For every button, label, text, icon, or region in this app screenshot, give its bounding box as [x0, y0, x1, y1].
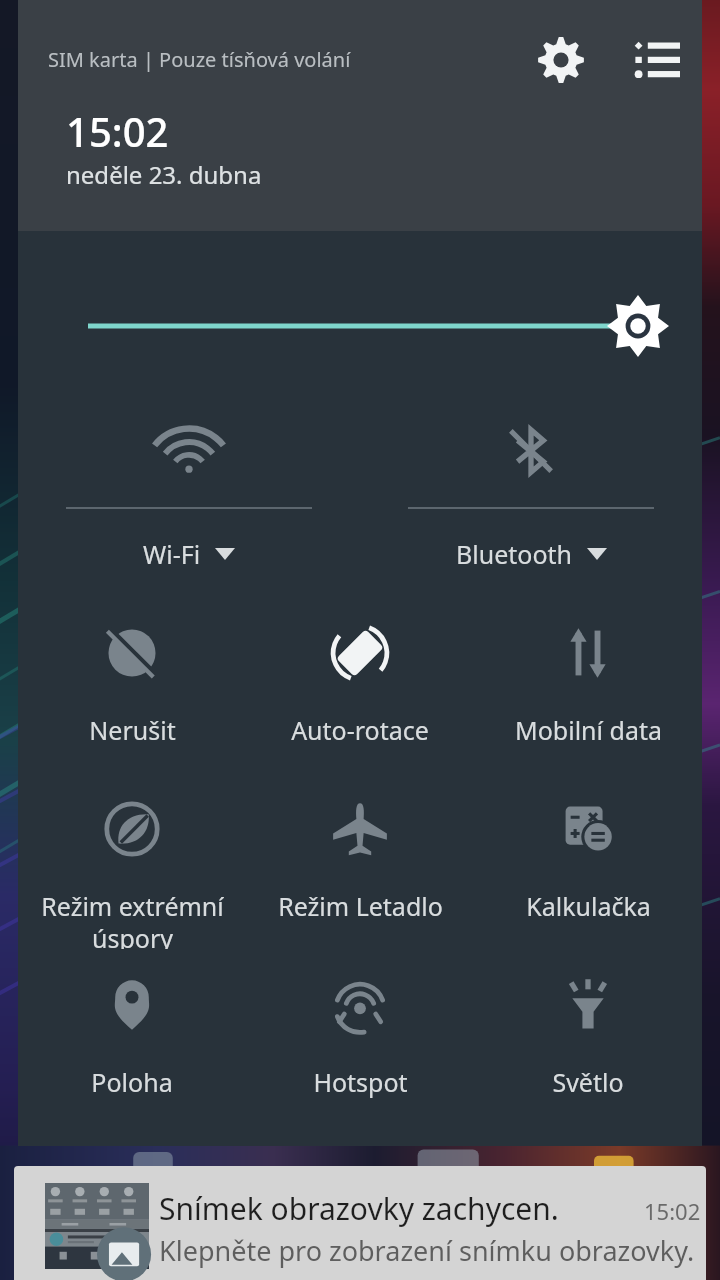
- staticText: Bluetooth: [456, 537, 573, 571]
- staticText: Světlo: [552, 1065, 624, 1099]
- button[interactable]: Kalkulačka: [474, 773, 702, 949]
- button[interactable]: Auto-rotace: [246, 597, 474, 773]
- button[interactable]: Wi-Fi: [18, 391, 360, 597]
- button[interactable]: Hotspot: [246, 949, 474, 1125]
- staticText: Hotspot: [313, 1065, 408, 1099]
- button[interactable]: Režim extrémní úspory: [18, 773, 246, 949]
- staticText: 15:02: [66, 104, 169, 158]
- staticText: Mobilní data: [515, 713, 662, 747]
- button[interactable]: Bluetooth: [360, 391, 702, 597]
- staticText: Režim extrémní úspory: [41, 889, 224, 949]
- staticText: Kalkulačka: [526, 889, 651, 923]
- button[interactable]: Notifications list: [625, 28, 689, 92]
- button[interactable]: Settings: [529, 28, 593, 92]
- button[interactable]: Brightness: [18, 289, 702, 363]
- staticText: Wi-Fi: [143, 537, 201, 571]
- staticText: Snímek obrazovky zachycen.: [159, 1188, 559, 1229]
- staticText: Režim Letadlo: [278, 889, 443, 923]
- staticText: 15:02: [644, 1196, 701, 1226]
- staticText: SIM karta | Pouze tísňová volání: [48, 46, 351, 73]
- button[interactable]: Nerušit: [18, 597, 246, 773]
- button[interactable]: Mobilní data: [474, 597, 702, 773]
- button[interactable]: Poloha: [18, 949, 246, 1125]
- staticText: Auto-rotace: [291, 713, 429, 747]
- button[interactable]: Snímek obrazovky zachycen.: [14, 1166, 706, 1280]
- staticText: neděle 23. dubna: [66, 158, 262, 191]
- staticText: Poloha: [91, 1065, 173, 1099]
- staticText: Nerušit: [89, 713, 176, 747]
- button[interactable]: Světlo: [474, 949, 702, 1125]
- button[interactable]: Režim Letadlo: [246, 773, 474, 949]
- staticText: Klepněte pro zobrazení snímku obrazovky.: [159, 1232, 695, 1269]
